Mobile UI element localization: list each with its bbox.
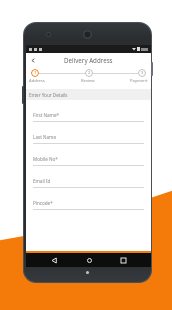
button[interactable]: 2	[85, 69, 93, 77]
button[interactable]: Last Name	[26, 122, 151, 144]
staticText: Pincode*	[33, 200, 53, 206]
staticText: Review	[81, 78, 95, 84]
staticText: Address	[29, 78, 45, 84]
staticText: Mobile No*	[33, 156, 58, 162]
button[interactable]: Back	[48, 254, 60, 266]
staticText: Enter Your Details	[29, 92, 68, 98]
button[interactable]: 1	[31, 69, 39, 77]
button[interactable]: Mobile No*	[26, 144, 151, 166]
staticText: 3	[141, 70, 144, 76]
button[interactable]: Email Id	[26, 166, 151, 188]
staticText: Delivery Address	[64, 56, 113, 64]
button[interactable]: Recents	[117, 254, 129, 266]
staticText: Payment	[130, 78, 148, 84]
staticText: Last Name	[33, 134, 56, 140]
button[interactable]: Pincode*	[26, 188, 151, 210]
staticText: 1	[34, 70, 37, 76]
staticText: First Name*	[33, 112, 60, 118]
button[interactable]: First Name*	[26, 100, 151, 122]
staticText: Email Id	[33, 178, 51, 184]
button[interactable]: Home	[83, 254, 95, 266]
button[interactable]: Back	[28, 55, 38, 65]
staticText: 2	[88, 70, 91, 76]
button[interactable]: 3	[138, 69, 146, 77]
